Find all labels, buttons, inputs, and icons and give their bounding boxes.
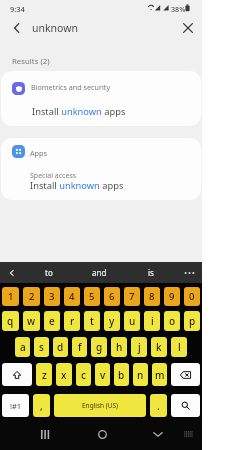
staticText: f	[78, 340, 82, 354]
staticText: 0	[189, 290, 195, 303]
button[interactable]: English (US)	[54, 394, 146, 417]
staticText: t	[90, 314, 94, 328]
staticText: 2	[29, 290, 35, 303]
staticText: r	[70, 314, 75, 328]
button[interactable]: z	[36, 363, 52, 386]
staticText: g	[96, 340, 103, 354]
button[interactable]: d	[53, 337, 68, 357]
button[interactable]: 2	[23, 287, 40, 306]
button[interactable]: q	[2, 311, 19, 331]
button[interactable]: y	[104, 311, 120, 331]
button[interactable]: p	[184, 311, 200, 331]
staticText: 9	[169, 290, 175, 303]
staticText: d	[57, 340, 64, 354]
button[interactable]: n	[133, 363, 148, 386]
staticText: z	[42, 368, 47, 382]
staticText: k	[156, 340, 162, 354]
button[interactable]: a	[15, 337, 30, 357]
button[interactable]: Shift	[2, 363, 32, 386]
button[interactable]: ,	[33, 394, 50, 417]
staticText: i	[151, 314, 154, 328]
staticText: .	[157, 399, 160, 413]
button[interactable]: Biometrics and security	[1, 71, 201, 126]
staticText: e	[49, 314, 55, 328]
button[interactable]: is	[125, 262, 176, 283]
button[interactable]: i	[144, 311, 160, 331]
staticText: !#1	[10, 401, 22, 411]
button[interactable]: 4	[64, 287, 80, 306]
staticText: l	[178, 340, 181, 354]
staticText: Apps	[30, 148, 47, 158]
button[interactable]: o	[164, 311, 180, 331]
staticText: ,	[40, 399, 43, 413]
button[interactable]: k	[151, 337, 167, 357]
button[interactable]: f	[72, 337, 87, 357]
staticText: a	[20, 340, 26, 354]
staticText: 8	[149, 290, 155, 303]
button[interactable]: Apps	[1, 138, 201, 200]
staticText: 5	[89, 290, 95, 303]
staticText: y	[109, 314, 115, 328]
staticText: w	[27, 314, 36, 328]
staticText: 1	[8, 290, 14, 303]
staticText: 4	[69, 290, 75, 303]
button[interactable]: 9	[164, 287, 180, 306]
button[interactable]: 6	[104, 287, 120, 306]
staticText: Install unknown apps	[32, 105, 126, 118]
staticText: j	[138, 340, 141, 354]
staticText: is	[148, 267, 154, 278]
button[interactable]: c	[76, 363, 91, 386]
staticText: 38%	[171, 4, 186, 14]
staticText: m	[155, 368, 165, 382]
staticText: Results (2)	[12, 56, 50, 67]
staticText: Install unknown apps	[30, 179, 124, 192]
button[interactable]: s	[34, 337, 49, 357]
button[interactable]: More options	[176, 262, 202, 283]
button[interactable]: Change keyboard	[176, 424, 200, 444]
staticText: c	[81, 368, 86, 382]
staticText: and	[92, 267, 107, 278]
staticText: u	[129, 314, 136, 328]
button[interactable]: 1	[2, 287, 19, 306]
staticText: 6	[109, 290, 115, 303]
button[interactable]: to	[24, 262, 74, 283]
button[interactable]: g	[91, 337, 107, 357]
staticText: q	[7, 314, 14, 328]
staticText: 3	[49, 290, 55, 303]
staticText: x	[61, 368, 67, 382]
button[interactable]: Clear search	[178, 18, 198, 38]
staticText: Biometrics and security	[31, 82, 111, 92]
button[interactable]: u	[124, 311, 140, 331]
staticText: unknown	[32, 21, 78, 35]
button[interactable]: b	[114, 363, 129, 386]
button[interactable]: and	[74, 262, 125, 283]
button[interactable]: 7	[124, 287, 140, 306]
button[interactable]: r	[64, 311, 80, 331]
button[interactable]: Hide keyboard	[139, 424, 177, 444]
button[interactable]: e	[44, 311, 60, 331]
button[interactable]: w	[23, 311, 40, 331]
staticText: 9:34	[10, 4, 25, 14]
button[interactable]: Back	[7, 18, 27, 38]
button[interactable]: v	[95, 363, 110, 386]
button[interactable]: Recents	[26, 424, 64, 444]
button[interactable]: l	[171, 337, 187, 357]
button[interactable]: 3	[44, 287, 60, 306]
staticText: o	[169, 314, 176, 328]
button[interactable]: Previous suggestions	[0, 262, 24, 283]
button[interactable]: !#1	[2, 394, 29, 417]
button[interactable]: j	[131, 337, 147, 357]
button[interactable]: 5	[84, 287, 100, 306]
button[interactable]: .	[150, 394, 167, 417]
button[interactable]: Home	[83, 424, 121, 444]
button[interactable]: t	[84, 311, 100, 331]
staticText: n	[137, 368, 144, 382]
button[interactable]: x	[56, 363, 72, 386]
staticText: English (US)	[82, 401, 119, 410]
button[interactable]: 8	[144, 287, 160, 306]
button[interactable]: Search	[171, 394, 200, 417]
button[interactable]: m	[152, 363, 167, 386]
button[interactable]: h	[111, 337, 127, 357]
button[interactable]: Backspace	[171, 363, 200, 386]
button[interactable]: 0	[184, 287, 200, 306]
